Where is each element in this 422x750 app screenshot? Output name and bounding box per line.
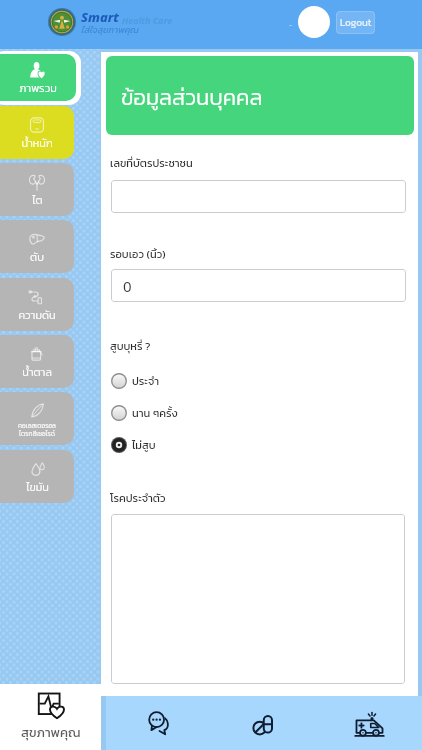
staticText: สูบบุหรี่ ? [110,338,151,354]
button[interactable]: น้ำตาล [0,335,74,388]
button[interactable]: ตับ [0,220,74,273]
staticText: สุขภาพคุณ [21,723,81,742]
button[interactable]: นาน ๆครั้ง [111,400,261,426]
button[interactable]: ไขมัน [0,450,74,503]
button[interactable]: คอเลสเตอรอล ไตรกลีเซอไรด์ [0,392,74,445]
staticText: น้ำหนัก [21,135,53,151]
staticText: ภาพรวม [19,80,57,96]
button[interactable]: ภาพรวม [0,54,76,101]
staticText: Logout [340,15,372,30]
button[interactable]: ไม่สูบ [111,432,261,458]
button[interactable]: 0 [111,269,406,302]
button[interactable]: Emergency [317,696,422,750]
button[interactable]: ไต [0,163,74,216]
staticText: ความดัน [18,307,56,323]
staticText: ไม่สูบ [132,437,156,453]
staticText: รอบเอว (นิ้ว) [110,246,166,262]
button[interactable]: น้ำหนัก [0,106,74,159]
staticText: ตับ [30,249,44,265]
staticText: นาน ๆครั้ง [132,405,178,421]
staticText: Health Care [122,14,173,26]
button[interactable] [111,514,405,684]
button[interactable]: สุขภาพคุณ [0,684,101,750]
staticText: ข้อมูลส่วนบุคคล [121,81,263,114]
staticText: ใส่ใจสุขภาพคุณ [81,23,139,36]
staticText: - [289,17,293,31]
staticText: ไขมัน [26,479,49,495]
button[interactable]: Chat [106,696,212,750]
button[interactable]: Logout [336,11,375,34]
staticText: ประจำ [132,373,160,389]
button[interactable] [111,180,406,213]
staticText: ไต [32,192,43,208]
button[interactable]: ประจำ [111,368,261,394]
staticText: 0 [123,276,132,296]
staticText: โรคประจำตัว [110,490,166,506]
staticText: Smart [81,8,119,26]
button[interactable]: Profile [298,6,330,38]
staticText: น้ำตาล [22,364,52,380]
staticText: เลขที่บัตรประชาชน [110,155,193,171]
button[interactable]: Medicine [212,696,317,750]
button[interactable]: ความดัน [0,278,74,331]
staticText: คอเลสเตอรอล ไตรกลีเซอไรด์ [18,421,56,438]
